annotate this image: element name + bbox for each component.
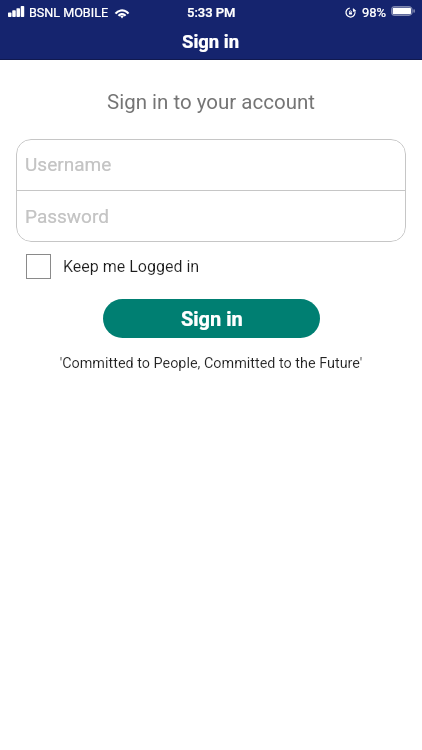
staticText: Password <box>25 205 109 227</box>
button[interactable]: Password <box>16 191 406 242</box>
other: Keep me logged in checkbox <box>26 254 51 279</box>
staticText: Sign in <box>182 31 240 53</box>
staticText: 5:33 PM <box>187 5 236 20</box>
button[interactable]: Sign in <box>103 299 320 338</box>
other: Rotation lock <box>345 7 356 18</box>
staticText: Keep me Logged in <box>63 257 200 276</box>
other: Battery 98 percent <box>391 6 415 16</box>
staticText: Username <box>25 153 112 175</box>
button[interactable]: Username <box>16 139 406 190</box>
staticText: Sign in <box>181 307 243 330</box>
staticText: 98% <box>362 5 387 20</box>
staticText: BSNL MOBILE <box>29 5 109 20</box>
other: Cellular signal strength <box>8 6 25 17</box>
staticText: Sign in to your account <box>0 90 422 114</box>
staticText: 'Committed to People, Committed to the F… <box>0 355 422 372</box>
other: Wi-Fi <box>114 6 130 18</box>
button[interactable]: Keep me logged in checkbox <box>26 254 208 279</box>
